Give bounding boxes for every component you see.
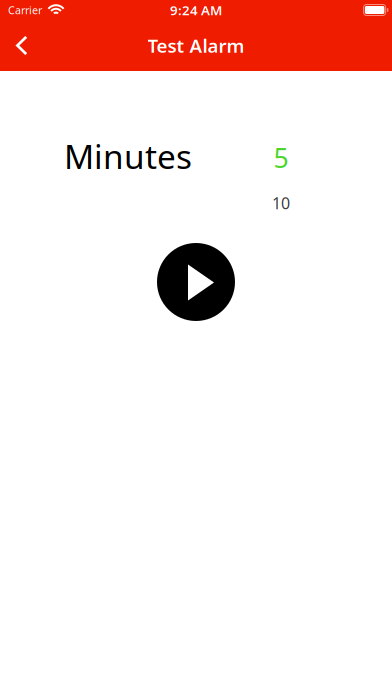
button[interactable]: Play xyxy=(157,243,235,321)
button[interactable]: Minutes, 5 xyxy=(240,140,322,214)
staticText: Carrier xyxy=(8,3,42,17)
staticText: 5 xyxy=(273,140,288,175)
staticText: 10 xyxy=(272,192,290,214)
staticText: Test Alarm xyxy=(147,33,244,58)
staticText: 9:24 AM xyxy=(170,1,222,19)
button[interactable]: Back xyxy=(0,24,42,66)
staticText: Minutes xyxy=(64,134,192,178)
